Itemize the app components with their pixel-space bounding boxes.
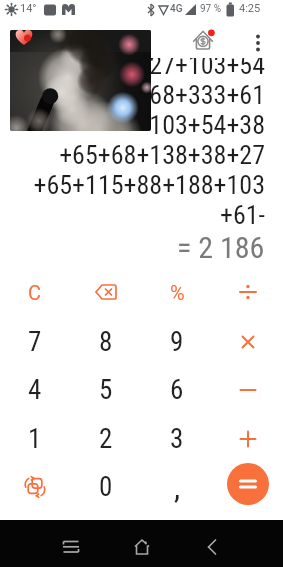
button[interactable]: 8 — [73, 318, 139, 366]
staticText: 7 — [28, 326, 42, 358]
button[interactable] — [215, 366, 281, 414]
button[interactable] — [215, 318, 281, 366]
staticText: 4G — [170, 3, 183, 15]
staticText: +65+68+138+38+27 — [59, 140, 265, 170]
staticText: 3 — [170, 423, 184, 455]
button[interactable] — [246, 30, 270, 54]
staticText: 5 — [99, 374, 113, 406]
button[interactable] — [227, 463, 269, 505]
staticText: = 2 186 — [177, 230, 265, 261]
button[interactable] — [2, 463, 68, 511]
staticText: 14° — [20, 2, 37, 15]
staticText: 68+333+61 — [149, 80, 265, 110]
button[interactable]: 6 — [144, 366, 210, 414]
staticText: 4 — [28, 374, 42, 406]
staticText: 0 — [99, 471, 113, 503]
button[interactable]: 5 — [73, 366, 139, 414]
button[interactable]: 0 — [73, 463, 139, 511]
staticText: 27+103+54 — [149, 58, 265, 80]
button[interactable] — [215, 268, 281, 316]
staticText: 2 — [99, 423, 113, 455]
staticText: 8 — [99, 326, 113, 358]
button[interactable] — [190, 26, 220, 56]
button[interactable]: 4 — [2, 366, 68, 414]
button[interactable]: 1 — [2, 415, 68, 463]
staticText: 6 — [170, 374, 184, 406]
button[interactable] — [196, 531, 228, 563]
button[interactable] — [215, 415, 281, 463]
button[interactable] — [73, 268, 139, 316]
button[interactable] — [55, 531, 87, 563]
staticText: +61- — [219, 200, 265, 230]
button[interactable]: % — [144, 268, 210, 316]
button[interactable]: C — [2, 268, 68, 316]
staticText: 103+54+38 — [149, 110, 265, 140]
staticText: 9 — [170, 326, 184, 358]
staticText: 1 — [28, 423, 42, 455]
button[interactable]: 2 — [73, 415, 139, 463]
staticText: , — [174, 469, 181, 505]
button[interactable]: 7 — [2, 318, 68, 366]
staticText: C — [28, 281, 42, 304]
staticText: +65+115+88+188+103 — [33, 170, 265, 200]
staticText: % — [170, 281, 185, 304]
staticText: 97 % — [200, 3, 222, 15]
button[interactable]: , — [144, 463, 210, 511]
staticText: 4:25 — [239, 2, 261, 15]
button[interactable]: 9 — [144, 318, 210, 366]
button[interactable]: 3 — [144, 415, 210, 463]
button[interactable] — [126, 531, 158, 563]
